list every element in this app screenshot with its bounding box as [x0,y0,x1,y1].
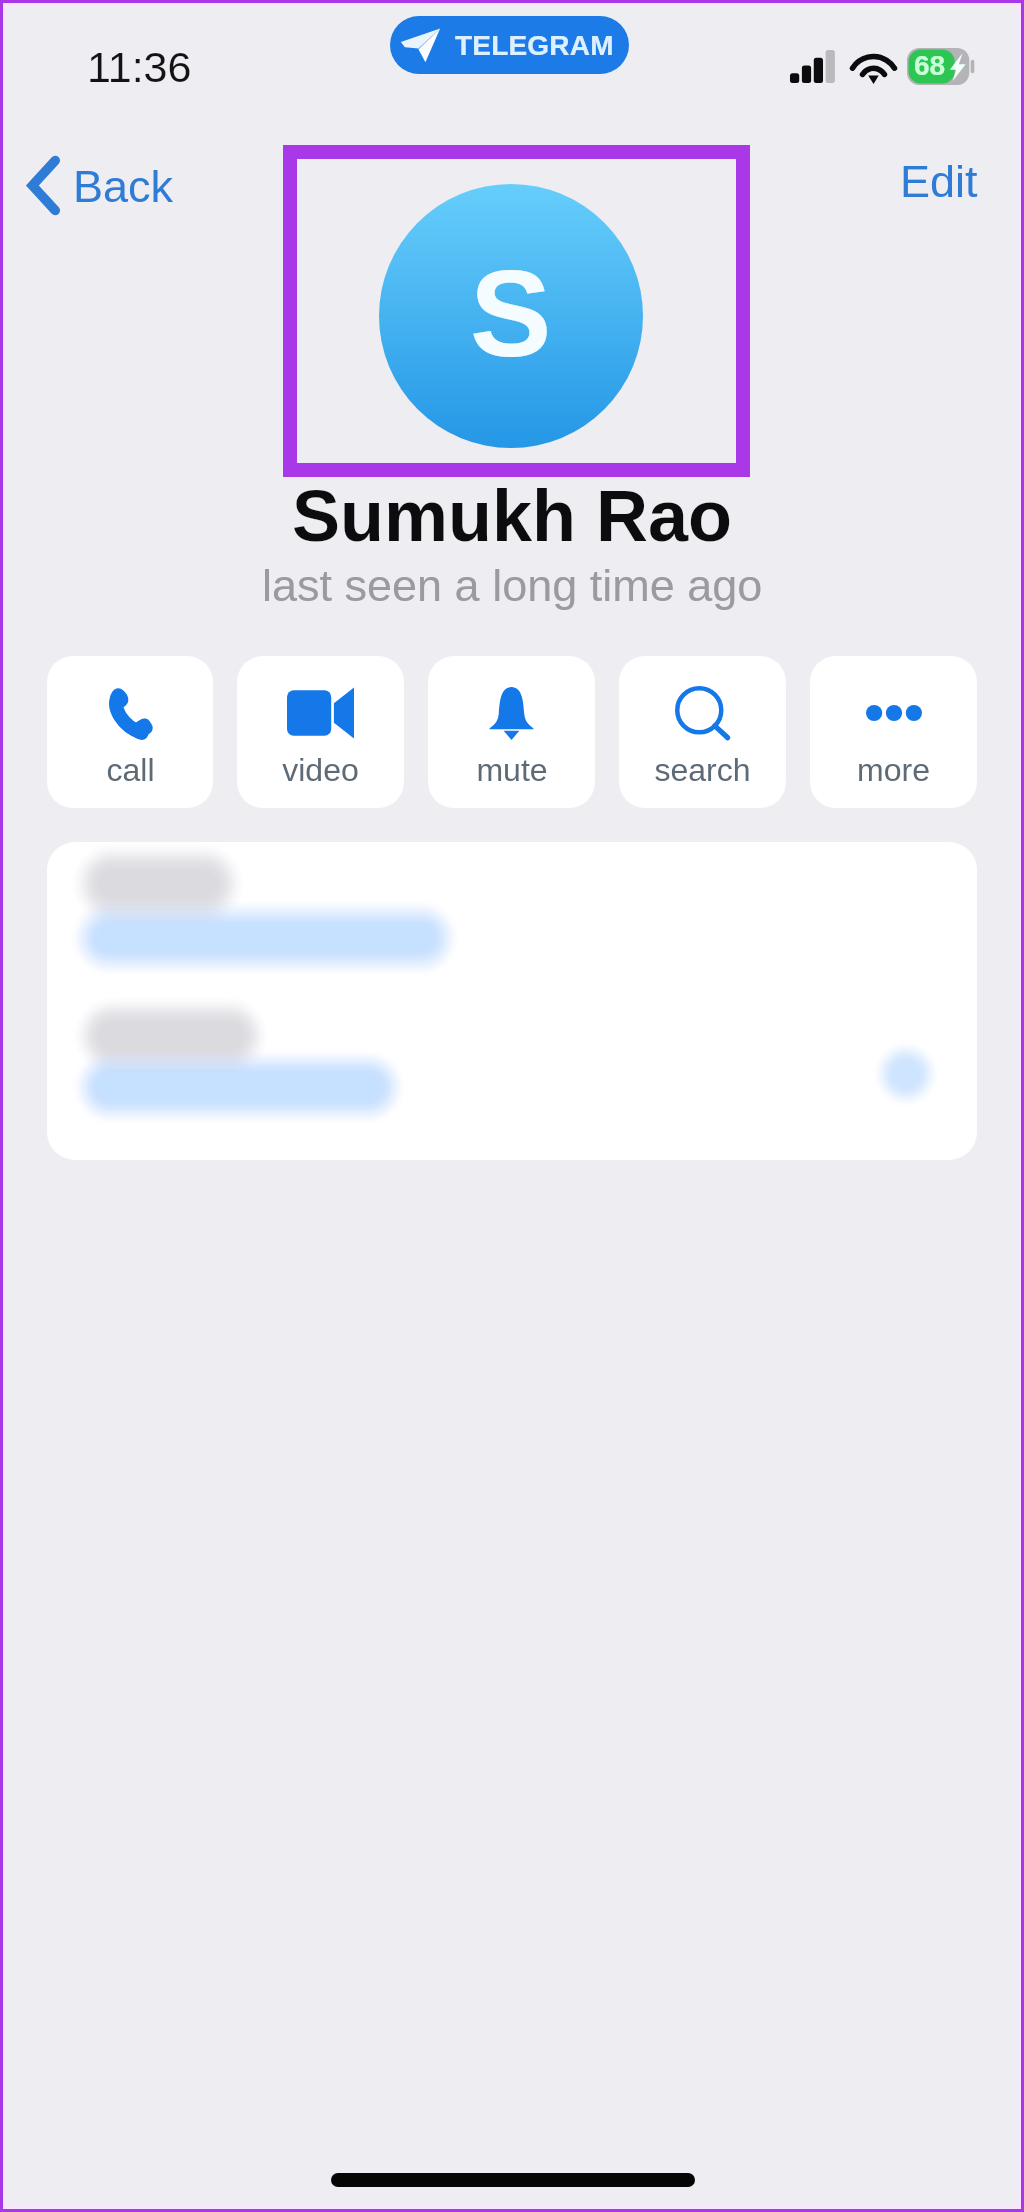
button[interactable]: Profile photo [379,184,643,448]
button[interactable]: search [619,656,786,808]
button[interactable]: more [810,656,977,808]
staticText: more [857,752,930,788]
button[interactable]: mute [428,656,595,808]
button[interactable]: video [237,656,404,808]
button[interactable] [47,1014,977,1160]
staticText: Sumukh Rao [292,476,733,556]
staticText: S [470,246,552,382]
staticText: Edit [900,156,978,206]
button[interactable]: Back [0,143,198,228]
staticText: search [654,752,751,788]
button[interactable]: call [47,656,213,808]
staticText: mute [476,752,548,788]
staticText: 68 [914,50,946,81]
button[interactable] [47,842,977,1014]
staticText: TELEGRAM [455,30,614,61]
staticText: 11:36 [87,43,192,91]
button[interactable]: Edit [878,142,1000,220]
staticText: video [282,752,359,788]
staticText: Back [73,161,174,211]
staticText: call [106,752,155,788]
staticText: last seen a long time ago [262,560,763,610]
